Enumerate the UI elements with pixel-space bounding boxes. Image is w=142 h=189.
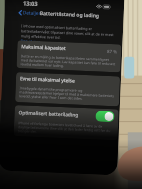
staticText: Maksimal kapasitet [21, 43, 66, 52]
button[interactable]: Evne til maksimal ytelse [15, 72, 120, 106]
button[interactable]: Tilbake til Detaljer [19, 9, 41, 17]
staticText: Detaljer [23, 9, 41, 17]
button[interactable]: Optimalisert batterilading på [95, 110, 115, 122]
button[interactable]: Finn ut mer ... [20, 38, 45, 44]
staticText: Evne til maksimal ytelse [20, 75, 75, 85]
staticText: Optimalisert batterilading [18, 109, 79, 119]
staticText: I iPhone med optimalisert batterilading … [21, 23, 119, 42]
staticText: Batteritilstand og lading [40, 10, 100, 19]
staticText: 13:03 [23, 0, 38, 8]
staticText: 87 % [107, 48, 117, 54]
staticText: Dette er en måling av batterikapasiteten… [20, 53, 117, 70]
button[interactable]: Maksimal kapasitet [16, 40, 121, 72]
button[interactable]: Optimalisert batterilading [13, 105, 119, 140]
staticText: iPhone vil forlenge batteriets levetid v… [18, 120, 114, 137]
staticText: Innebygde dynamiske programvare- og mask… [19, 85, 116, 102]
